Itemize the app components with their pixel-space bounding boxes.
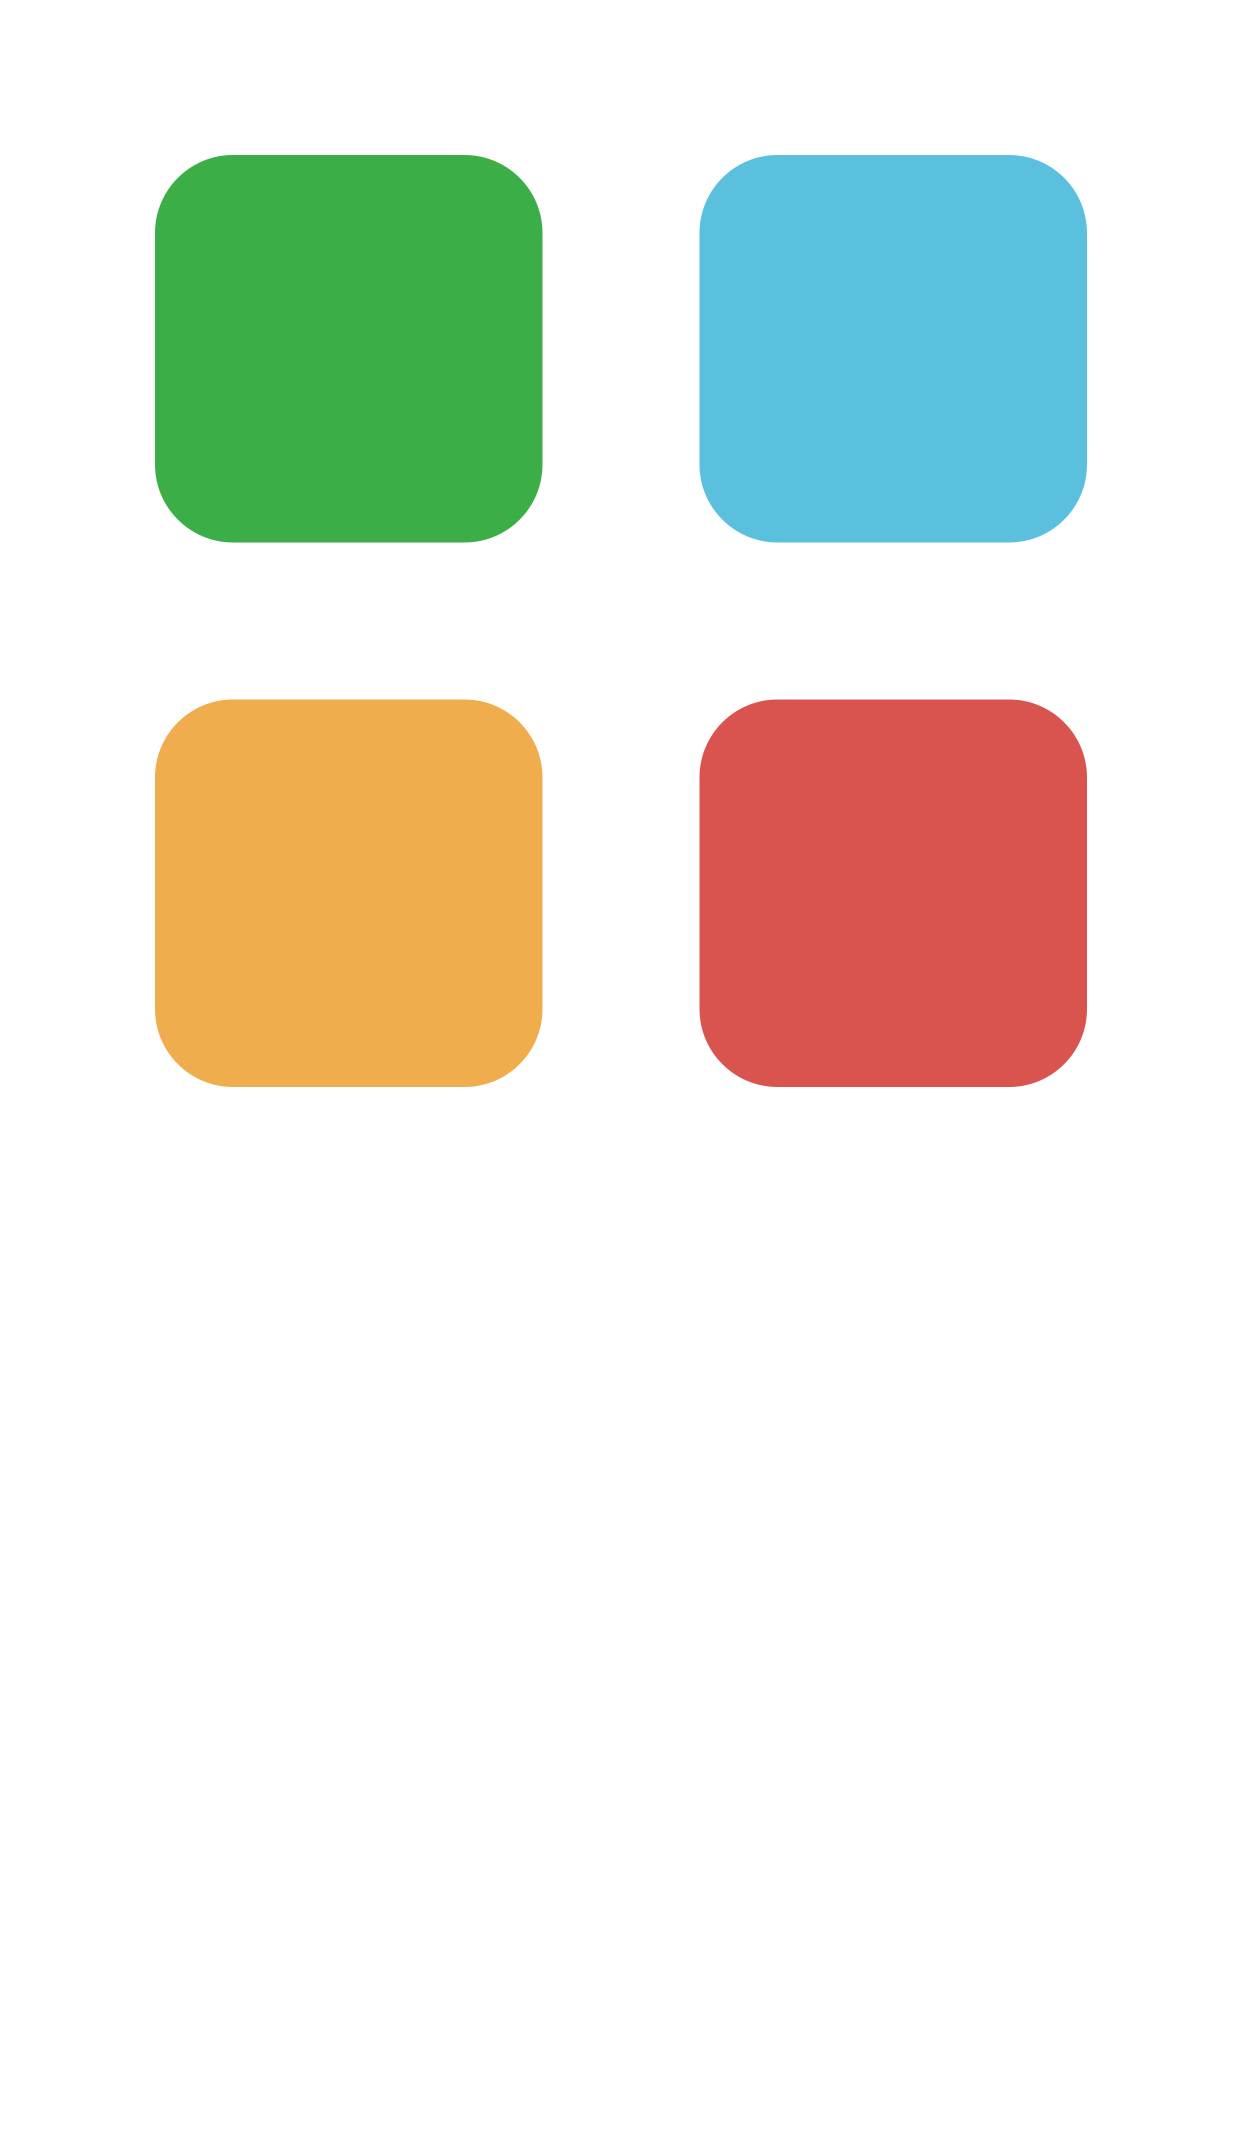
button[interactable]: Green [155,155,542,542]
button[interactable]: Blue [699,155,1087,542]
button[interactable]: Orange [155,699,542,1087]
button[interactable]: Red [699,699,1087,1087]
